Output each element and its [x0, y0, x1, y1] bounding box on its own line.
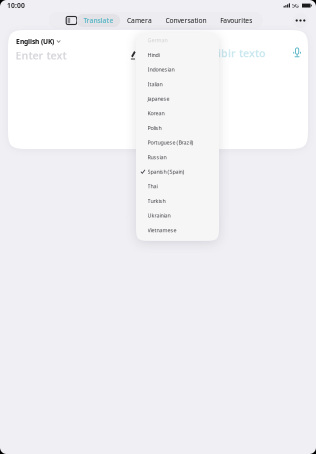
staticText: Portuguese (Brazil) [147, 139, 193, 146]
staticText: Hindi [147, 51, 159, 58]
staticText: Enter text [15, 48, 66, 63]
staticText: Camera [127, 16, 152, 25]
staticText: Escribir texto [197, 46, 266, 60]
staticText: German [147, 37, 167, 44]
button[interactable]: German [136, 33, 219, 48]
button[interactable]: Conversation [159, 14, 213, 27]
button[interactable]: Camera [120, 14, 159, 27]
staticText: Thai [147, 183, 157, 190]
staticText: Korean [147, 110, 164, 117]
staticText: Spanish (Spain) [147, 168, 184, 175]
button[interactable]: Portuguese (Brazil) [136, 135, 219, 150]
button[interactable]: Spanish (Spain) [136, 164, 219, 179]
staticText: Italian [147, 81, 162, 88]
button[interactable]: Vietnamese [136, 223, 219, 237]
button[interactable]: More [293, 13, 308, 28]
button[interactable]: Korean [136, 106, 219, 121]
staticText: Conversation [166, 16, 207, 25]
staticText: 5G [292, 2, 299, 9]
staticText: Turkish [147, 197, 165, 204]
button[interactable]: Russian [136, 150, 219, 164]
button[interactable]: Japanese [136, 91, 219, 106]
button[interactable]: Indonesian [136, 62, 219, 77]
staticText: Vietnamese [147, 227, 176, 234]
staticText: English (UK) [16, 37, 54, 46]
staticText: Ukrainian [147, 212, 170, 219]
button[interactable]: Show Sidebar [49, 13, 77, 27]
button[interactable]: Handwriting [131, 51, 136, 60]
staticText: Indonesian [147, 66, 174, 73]
button[interactable]: Favourites [213, 14, 259, 27]
staticText: Polish [147, 124, 161, 131]
button[interactable]: Translate [77, 14, 120, 27]
button[interactable]: Thai [136, 179, 219, 194]
button[interactable]: Polish [136, 121, 219, 135]
staticText: 10:00 [7, 1, 25, 10]
staticText: Favourites [220, 16, 252, 25]
staticText: Russian [147, 154, 166, 161]
button[interactable]: English (UK) [16, 37, 61, 46]
staticText: Translate [83, 16, 113, 25]
button[interactable]: Italian [136, 77, 219, 91]
staticText: Japanese [147, 95, 169, 102]
button[interactable]: Turkish [136, 194, 219, 208]
button[interactable]: Ukrainian [136, 208, 219, 223]
button[interactable]: Dictate [293, 48, 301, 58]
button[interactable]: Hindi [136, 48, 219, 62]
